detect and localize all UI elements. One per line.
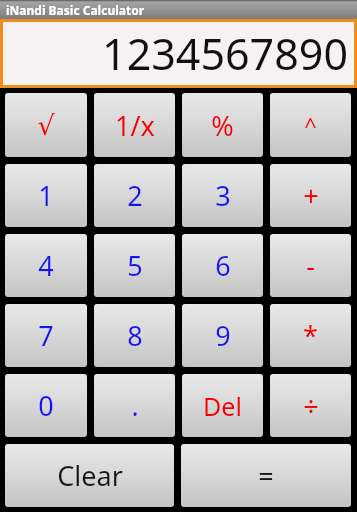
button[interactable]: 0 — [5, 374, 87, 437]
button[interactable]: = — [181, 444, 351, 507]
staticText: √ — [37, 110, 55, 141]
button[interactable]: 3 — [182, 164, 263, 227]
staticText: = — [258, 457, 274, 494]
button[interactable]: ÷ — [270, 374, 351, 437]
staticText: - — [306, 247, 315, 284]
button[interactable]: 5 — [94, 234, 175, 297]
staticText: 6 — [215, 247, 231, 284]
staticText: 9 — [215, 317, 231, 354]
button[interactable]: √ — [5, 93, 87, 157]
staticText: 7 — [38, 317, 54, 354]
button[interactable]: 2 — [94, 164, 175, 227]
staticText: 8 — [127, 317, 143, 354]
button[interactable]: + — [270, 164, 351, 227]
button[interactable]: 7 — [5, 304, 87, 367]
button[interactable]: * — [270, 304, 351, 367]
staticText: 5 — [127, 247, 143, 284]
staticText: . — [131, 387, 139, 424]
button[interactable]: 1/x — [94, 93, 175, 157]
staticText: Del — [203, 389, 242, 423]
button[interactable]: 8 — [94, 304, 175, 367]
staticText: iNandi Basic Calculator — [6, 2, 145, 18]
button[interactable]: 1 — [5, 164, 87, 227]
staticText: 0 — [38, 387, 54, 424]
button[interactable]: 4 — [5, 234, 87, 297]
button[interactable]: Del — [182, 374, 263, 437]
staticText: 1/x — [115, 107, 155, 144]
staticText: ^ — [304, 110, 317, 140]
staticText: + — [303, 177, 319, 214]
button[interactable]: Clear — [5, 444, 174, 507]
staticText: 1 — [38, 177, 54, 214]
button[interactable]: % — [182, 93, 263, 157]
staticText: 2 — [127, 177, 143, 214]
button[interactable]: 9 — [182, 304, 263, 367]
staticText: Clear — [57, 457, 123, 494]
button[interactable]: - — [270, 234, 351, 297]
staticText: ÷ — [303, 387, 319, 424]
button[interactable]: 6 — [182, 234, 263, 297]
staticText: * — [303, 317, 318, 354]
staticText: 1234567890 — [102, 24, 348, 83]
button[interactable]: ^ — [270, 93, 351, 157]
button[interactable]: . — [94, 374, 175, 437]
staticText: % — [211, 107, 234, 144]
staticText: 4 — [38, 247, 54, 284]
staticText: 3 — [215, 177, 231, 214]
button[interactable]: 1234567890 — [3, 22, 354, 85]
